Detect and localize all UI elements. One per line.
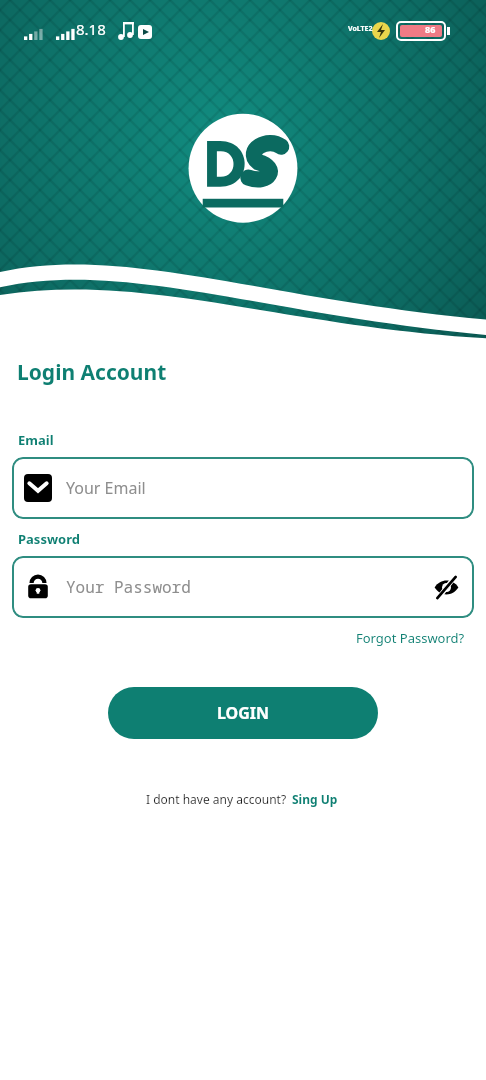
staticText: Password: [18, 530, 80, 548]
other: Show password: [433, 574, 460, 601]
button[interactable]: LOGIN: [108, 687, 378, 739]
staticText: Your Email: [66, 477, 460, 499]
staticText: VoLTE2: [348, 24, 373, 34]
button[interactable]: Email: [12, 457, 474, 519]
other: Email: [24, 474, 52, 502]
button[interactable]: Sing Up: [290, 789, 340, 809]
staticText: 86: [425, 23, 436, 35]
staticText: I dont have any account?: [146, 791, 290, 807]
staticText: 8.18: [76, 19, 106, 39]
button[interactable]: Forgot Password?: [356, 626, 486, 650]
staticText: Login Account: [17, 358, 167, 387]
staticText: Your Password: [66, 576, 433, 598]
other: Password: [24, 573, 52, 601]
button[interactable]: Password: [12, 556, 474, 618]
staticText: Email: [18, 431, 54, 449]
staticText: LOGIN: [217, 702, 270, 724]
